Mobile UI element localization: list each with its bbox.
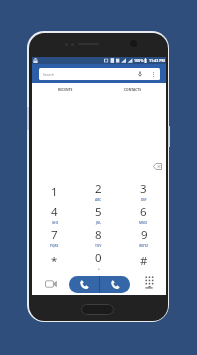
button[interactable]: 6: [121, 201, 166, 224]
staticText: ABC: [95, 198, 102, 202]
staticText: *: [51, 253, 58, 269]
other: Voice search: [138, 71, 142, 77]
button[interactable]: 4: [32, 201, 76, 224]
staticText: 9: [141, 227, 148, 243]
button[interactable]: 1: [32, 178, 76, 201]
staticText: 0: [95, 250, 102, 266]
staticText: 11:43 PM: [149, 58, 165, 63]
button[interactable]: Video call: [45, 280, 57, 288]
staticText: PQRS: [50, 244, 59, 248]
staticText: TUV: [95, 244, 102, 248]
button[interactable]: 2: [76, 178, 121, 201]
button[interactable]: CONTACTS: [99, 83, 166, 96]
button[interactable]: RECENTS: [32, 83, 99, 96]
button[interactable]: #: [121, 247, 166, 270]
button[interactable]: 8: [76, 224, 121, 247]
staticText: 1: [51, 184, 58, 200]
staticText: CONTACTS: [124, 87, 142, 91]
button[interactable]: *: [32, 247, 76, 270]
staticText: 8: [95, 227, 102, 243]
staticText: DEF: [141, 198, 147, 202]
staticText: MNO: [139, 221, 148, 225]
staticText: Search: [43, 72, 54, 77]
button[interactable]: 5: [76, 201, 121, 224]
staticText: +: [98, 267, 100, 271]
staticText: 6: [140, 204, 147, 220]
button[interactable]: 3: [121, 178, 166, 201]
staticText: GHI: [52, 221, 58, 225]
button[interactable]: Backspace: [153, 163, 162, 170]
button[interactable]: Search: [39, 68, 160, 80]
staticText: 7: [51, 227, 58, 243]
button[interactable]: Keypad: [145, 276, 153, 290]
staticText: JKL: [96, 221, 101, 225]
button[interactable]: Call with SIM 2: [100, 276, 130, 293]
button[interactable]: 9: [121, 224, 166, 247]
staticText: 5: [95, 204, 102, 220]
staticText: 100%: [134, 58, 144, 63]
staticText: WXYZ: [139, 244, 149, 248]
staticText: 4: [51, 204, 58, 220]
staticText: 2: [95, 181, 102, 197]
button[interactable]: 7: [32, 224, 76, 247]
button[interactable]: More options: [151, 70, 155, 78]
staticText: 3: [140, 181, 147, 197]
button[interactable]: Call with SIM 1: [69, 276, 99, 293]
staticText: RECENTS: [58, 87, 73, 91]
button[interactable]: 0: [76, 247, 121, 270]
staticText: #: [140, 253, 148, 269]
